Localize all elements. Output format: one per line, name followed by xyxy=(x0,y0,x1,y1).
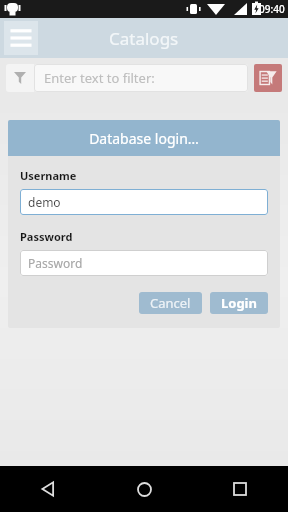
button[interactable]: Recent apps xyxy=(192,466,288,512)
button[interactable]: Open navigation menu xyxy=(4,21,38,55)
staticText: Login xyxy=(221,294,257,312)
button[interactable]: Enter text to filter: xyxy=(34,64,248,92)
staticText: 09:40 xyxy=(259,2,285,16)
button[interactable]: Login xyxy=(210,292,268,314)
staticText: Database login… xyxy=(89,129,199,148)
button[interactable]: Apply filter xyxy=(254,64,282,92)
staticText: Enter text to filter: xyxy=(44,69,155,87)
button[interactable]: demo xyxy=(20,189,268,215)
button[interactable]: Home xyxy=(96,466,192,512)
staticText: Password xyxy=(20,229,73,244)
button[interactable]: Cancel xyxy=(139,292,202,314)
staticText: demo xyxy=(28,194,61,210)
button[interactable]: Password xyxy=(20,250,268,276)
staticText: Cancel xyxy=(150,294,191,312)
staticText: Username xyxy=(20,168,77,183)
button[interactable]: Back xyxy=(0,466,96,512)
staticText: Catalogs xyxy=(109,27,179,50)
staticText: Password xyxy=(28,255,83,271)
button[interactable]: Filter xyxy=(6,64,34,92)
